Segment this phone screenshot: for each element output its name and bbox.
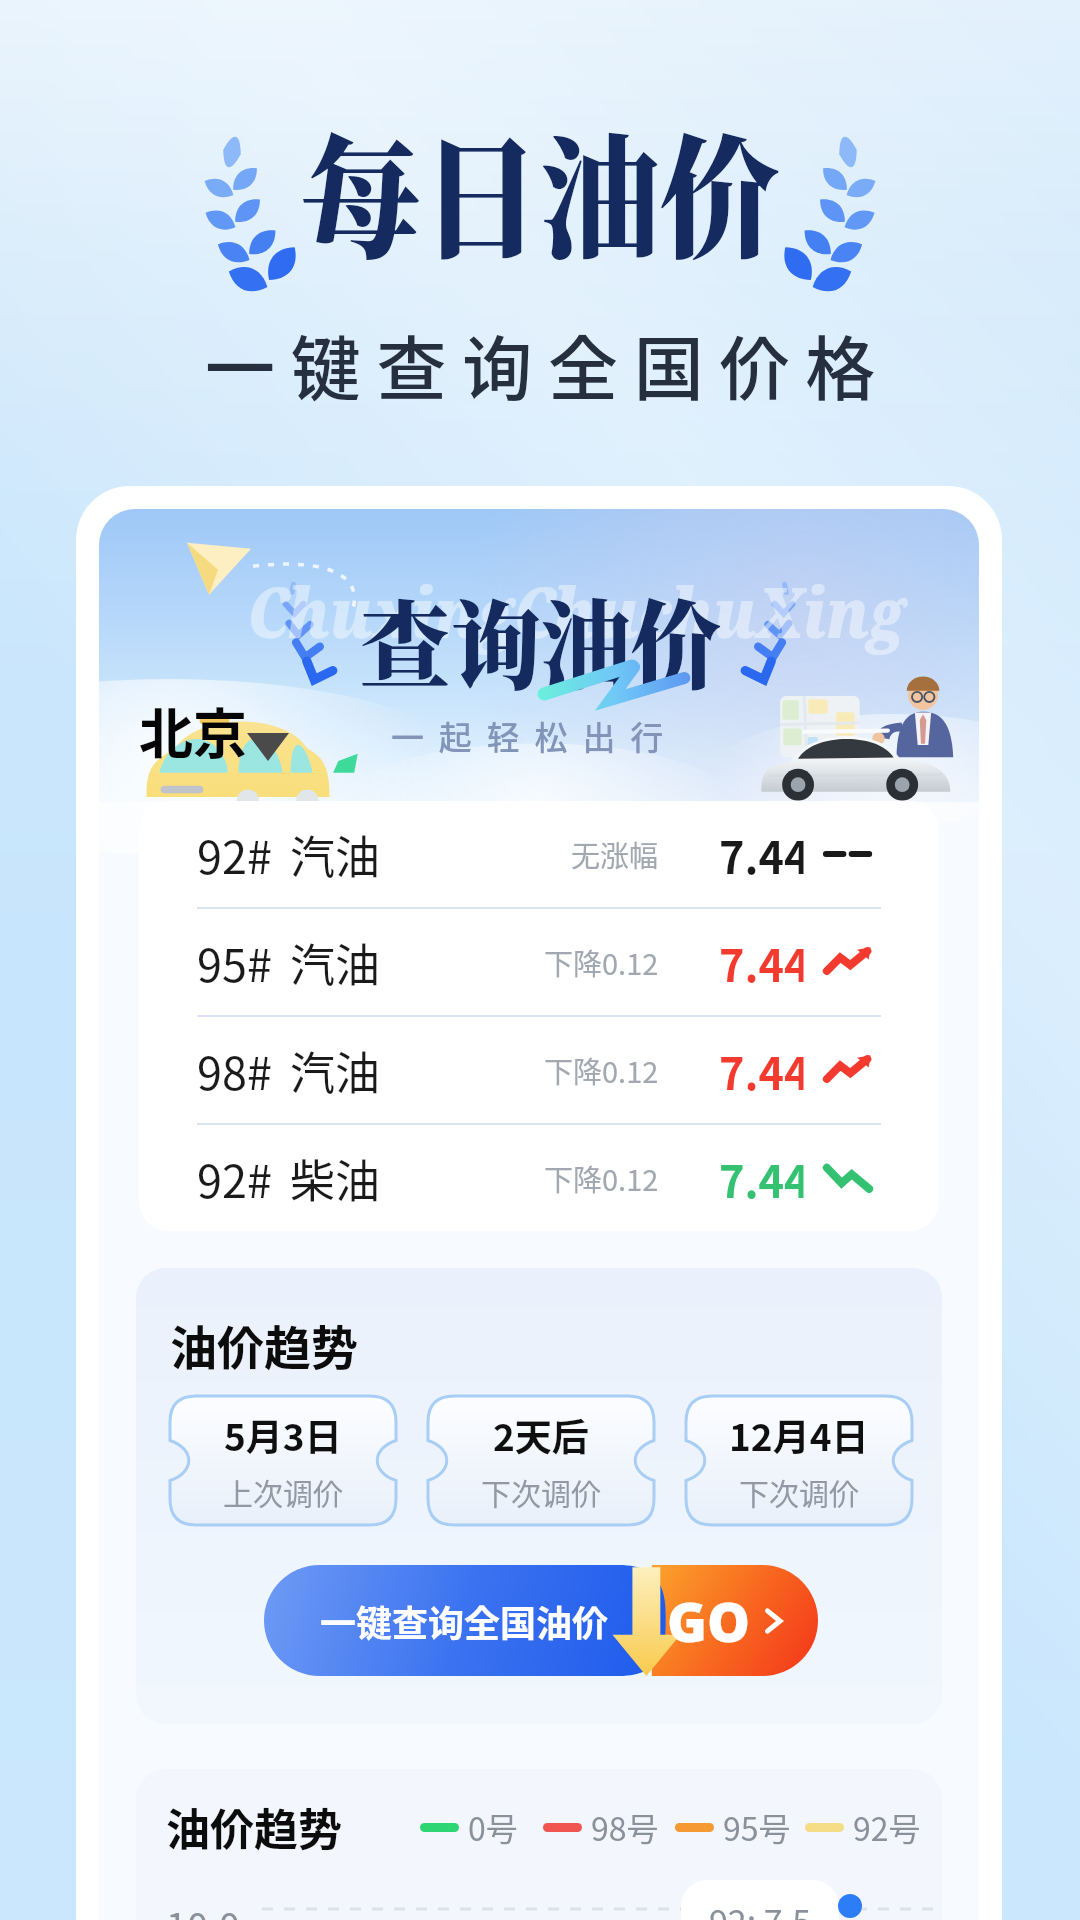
button[interactable]: 5月3日 [170,1396,396,1525]
staticText: 0号 [468,1804,518,1850]
staticText: 92# [197,822,272,887]
staticText: 92: 7.5 [709,1896,811,1920]
staticText: 一 起 轻 松 出 行 [391,712,664,760]
staticText: 无涨幅 [571,833,659,875]
staticText: 柴油 [290,1146,381,1211]
staticText: 下降0.12 [544,941,659,983]
staticText: 下次调价 [481,1470,601,1513]
staticText: 12月4日 [729,1408,869,1462]
button[interactable]: 12月4日 [686,1396,912,1525]
staticText: 下降0.12 [544,1157,659,1199]
button[interactable]: 95# [139,909,939,1015]
staticText: 7.44 [719,1146,803,1211]
staticText: 5月3日 [224,1408,342,1462]
staticText: 北京 [139,691,247,769]
staticText: GO [667,1584,750,1658]
staticText: 92号 [853,1804,921,1850]
staticText: 92# [197,1146,272,1211]
button[interactable]: 北京 [139,691,289,769]
staticText: 汽油 [290,930,381,995]
button[interactable]: 98# [139,1017,939,1123]
staticText: 每日油价 [301,94,779,285]
staticText: 查询油价 [360,569,721,708]
staticText: 7.44 [719,930,803,995]
staticText: 一 键 查 询 全 国 价 格 [205,314,876,415]
staticText: 下降0.12 [544,1049,659,1091]
other: 切换城市 [247,733,289,761]
button[interactable]: 92# [139,801,939,907]
staticText: 7.44 [719,1038,803,1103]
button[interactable]: 92# [139,1125,939,1231]
staticText: 油价趋势 [170,1310,358,1378]
staticText: 7.44 [719,822,803,887]
staticText: 95# [197,930,272,995]
staticText: 一键查询全国油价 [320,1595,609,1647]
staticText: 95号 [723,1804,791,1850]
staticText: 98# [197,1038,272,1103]
staticText: 98号 [591,1804,659,1850]
staticText: 下次调价 [739,1470,859,1513]
button[interactable]: 一键查询全国油价 [264,1565,818,1676]
button[interactable]: 2天后 [428,1396,654,1525]
staticText: 2天后 [493,1408,589,1462]
staticText: 上次调价 [223,1470,343,1513]
staticText: 油价趋势 [166,1795,342,1859]
staticText: 10.0 [166,1897,240,1920]
staticText: 汽油 [290,1038,381,1103]
staticText: 汽油 [290,822,381,887]
staticText: ChuxingChuchuXing [247,563,905,659]
